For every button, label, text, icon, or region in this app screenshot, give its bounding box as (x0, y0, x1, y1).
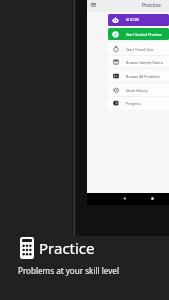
staticText: Browse Sample Exams (126, 60, 164, 65)
button[interactable]: AI SCORE (108, 14, 169, 26)
staticText: Browse All Problems (126, 74, 161, 79)
staticText: Show History (126, 88, 148, 93)
button[interactable]: Show History (108, 83, 169, 97)
staticText: Problems at your skill level (18, 265, 120, 276)
button[interactable]: Home (150, 196, 155, 201)
staticText: Progress (126, 101, 141, 106)
staticText: Practice (39, 238, 95, 258)
button[interactable]: Back (122, 196, 127, 201)
button[interactable]: Open navigation menu (89, 0, 98, 9)
staticText: AI SCORE (126, 18, 140, 22)
button[interactable]: Start Timed Quiz (108, 42, 169, 56)
button[interactable]: Browse Sample Exams (108, 55, 169, 69)
staticText: Start Guided Practice (126, 32, 162, 37)
button[interactable]: Progress (108, 96, 169, 110)
button[interactable]: Start Guided Practice (108, 28, 169, 40)
staticText: Start Timed Quiz (126, 47, 154, 52)
button[interactable]: Browse All Problems (108, 69, 169, 83)
staticText: Practice (142, 2, 161, 9)
